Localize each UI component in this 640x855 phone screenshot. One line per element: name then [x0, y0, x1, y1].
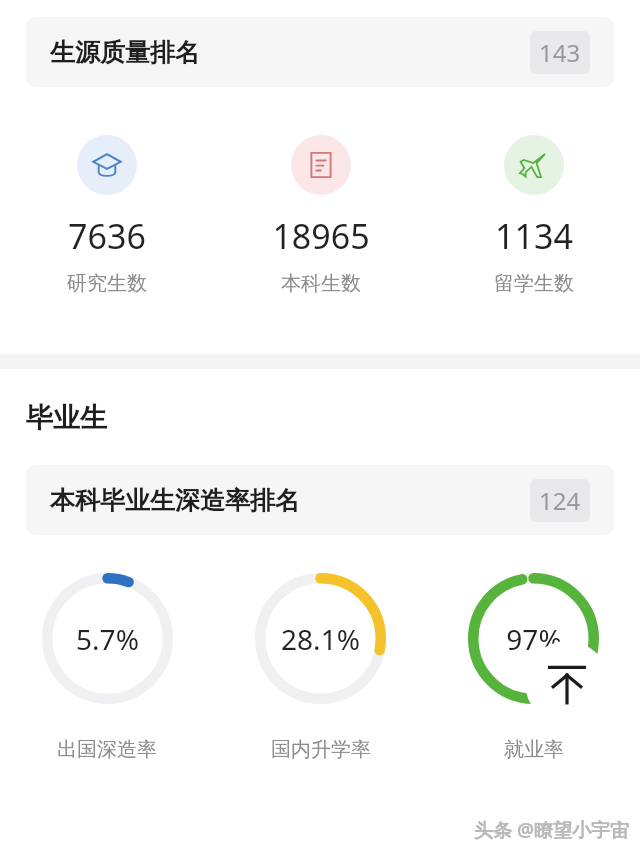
staticText: 28.1% [281, 620, 360, 658]
button[interactable]: Scroll to top [525, 641, 609, 725]
staticText: 研究生数 [67, 271, 147, 296]
staticText: 留学生数 [494, 271, 574, 296]
button[interactable]: 本科毕业生深造率排名 [26, 465, 614, 535]
button[interactable]: 28.1% [214, 573, 427, 762]
button[interactable]: 生源质量排名 [26, 17, 614, 87]
staticText: 本科毕业生深造率排名 [50, 485, 530, 516]
staticText: 5.7% [76, 620, 139, 658]
staticText: 国内升学率 [271, 737, 371, 762]
staticText: 本科生数 [281, 271, 361, 296]
staticText: 124 [539, 484, 581, 517]
button[interactable]: 5.7% [0, 573, 214, 762]
staticText: 18965 [272, 213, 370, 259]
staticText: 毕业生 [26, 401, 107, 435]
staticText: 7636 [68, 213, 146, 259]
staticText: 出国深造率 [57, 737, 157, 762]
staticText: 就业率 [504, 737, 564, 762]
button[interactable]: 18965 [214, 135, 427, 296]
button[interactable]: 97% [427, 573, 640, 762]
staticText: 97% [506, 620, 562, 658]
staticText: 生源质量排名 [50, 37, 530, 68]
staticText: 143 [539, 36, 581, 69]
button[interactable]: 7636 [0, 135, 214, 296]
button[interactable]: 1134 [427, 135, 640, 296]
staticText: 头条 @瞭望小宇宙 [474, 817, 630, 843]
staticText: 1134 [495, 213, 573, 259]
